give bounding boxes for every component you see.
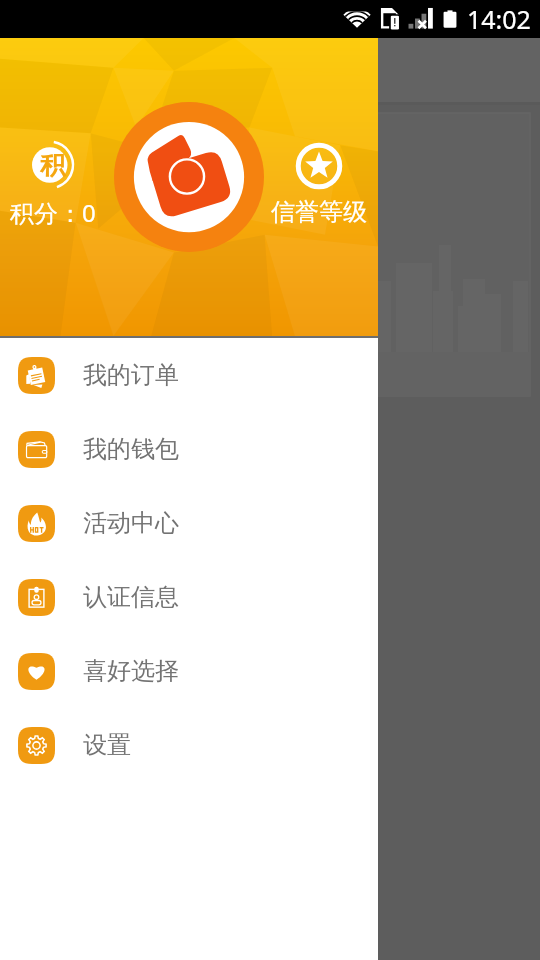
staticText: 积 bbox=[40, 150, 65, 181]
button[interactable]: 活动中心 bbox=[0, 486, 378, 560]
staticText: 我的订单 bbox=[83, 360, 179, 390]
staticText: 我的钱包 bbox=[83, 434, 179, 464]
staticText: 喜好选择 bbox=[83, 656, 179, 686]
staticText: 积分：0 bbox=[10, 196, 96, 229]
staticText: 14:02 bbox=[467, 2, 531, 36]
staticText: 认证信息 bbox=[83, 582, 179, 612]
button[interactable]: 我的订单 bbox=[0, 338, 378, 412]
button[interactable]: 我的钱包 bbox=[0, 412, 378, 486]
button[interactable]: 认证信息 bbox=[0, 560, 378, 634]
button[interactable]: 积 bbox=[2, 136, 104, 233]
staticText: 信誉等级 bbox=[271, 197, 367, 227]
button[interactable]: 信誉等级 bbox=[263, 137, 375, 231]
staticText: 设置 bbox=[83, 730, 131, 760]
button[interactable]: 设置 bbox=[0, 708, 378, 782]
button[interactable]: 喜好选择 bbox=[0, 634, 378, 708]
button[interactable]: Profile avatar bbox=[114, 102, 264, 252]
staticText: 活动中心 bbox=[83, 508, 179, 538]
